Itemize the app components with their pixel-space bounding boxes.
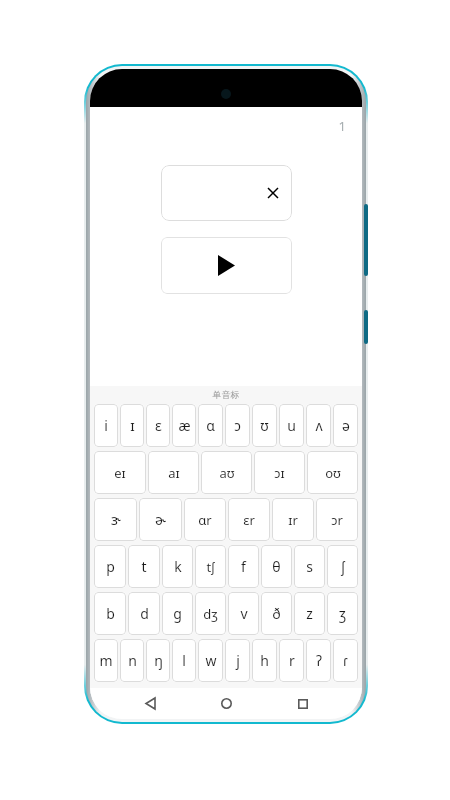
staticText: ŋ xyxy=(154,651,163,670)
staticText: i xyxy=(104,416,108,435)
button[interactable]: ɔr xyxy=(316,498,358,541)
button[interactable]: Clear xyxy=(262,182,284,204)
staticText: t xyxy=(141,557,147,576)
button[interactable]: Back xyxy=(133,688,167,719)
button[interactable]: Clear xyxy=(161,165,292,221)
staticText: ʒ xyxy=(339,604,346,623)
staticText: ɔ xyxy=(234,416,241,435)
button[interactable]: n xyxy=(120,639,144,682)
button[interactable]: ɑ xyxy=(198,404,223,447)
staticText: ɾ xyxy=(343,651,348,670)
staticText: ɔɪ xyxy=(274,464,285,482)
button[interactable]: eɪ xyxy=(94,451,146,494)
button[interactable]: ɪr xyxy=(272,498,314,541)
staticText: tʃ xyxy=(206,558,215,576)
staticText: ɪ xyxy=(130,416,135,435)
staticText: v xyxy=(240,604,248,623)
button[interactable]: d xyxy=(128,592,160,635)
button[interactable]: Play xyxy=(161,237,292,294)
staticText: ɔr xyxy=(331,511,343,529)
staticText: ɛ xyxy=(155,416,162,435)
button[interactable]: aʊ xyxy=(201,451,252,494)
staticText: d xyxy=(140,604,149,623)
button[interactable]: ɔɪ xyxy=(254,451,305,494)
staticText: r xyxy=(289,651,295,670)
staticText: ə xyxy=(342,416,350,435)
staticText: u xyxy=(287,416,296,435)
button[interactable]: j xyxy=(225,639,250,682)
staticText: 1 xyxy=(90,117,346,135)
button[interactable]: k xyxy=(162,545,193,588)
staticText: j xyxy=(236,651,240,670)
button[interactable]: ʔ xyxy=(306,639,331,682)
staticText: ʃ xyxy=(341,557,345,576)
staticText: b xyxy=(106,604,115,623)
staticText: ʔ xyxy=(316,651,322,670)
button[interactable]: ð xyxy=(261,592,292,635)
button[interactable]: b xyxy=(94,592,126,635)
staticText: ʌ xyxy=(315,416,323,435)
staticText: m xyxy=(99,651,113,670)
button[interactable]: p xyxy=(94,545,126,588)
button[interactable]: f xyxy=(228,545,259,588)
button[interactable]: ʒ xyxy=(327,592,358,635)
button[interactable]: l xyxy=(172,639,196,682)
staticText: ɚ xyxy=(155,510,166,529)
button[interactable]: g xyxy=(162,592,193,635)
button[interactable]: ə xyxy=(333,404,358,447)
button[interactable]: aɪ xyxy=(148,451,199,494)
button[interactable]: ɛr xyxy=(228,498,270,541)
button[interactable]: ɑr xyxy=(184,498,226,541)
button[interactable]: r xyxy=(279,639,304,682)
button[interactable]: m xyxy=(94,639,118,682)
button[interactable]: ɛ xyxy=(146,404,170,447)
staticText: z xyxy=(306,604,313,623)
button[interactable]: Recents xyxy=(286,688,320,719)
staticText: w xyxy=(205,651,217,670)
button[interactable]: t xyxy=(128,545,160,588)
button[interactable]: θ xyxy=(261,545,292,588)
button[interactable]: v xyxy=(228,592,259,635)
staticText: g xyxy=(173,604,182,623)
button[interactable]: h xyxy=(252,639,277,682)
button[interactable]: ɪ xyxy=(120,404,144,447)
staticText: oʊ xyxy=(325,464,341,482)
staticText: ɪr xyxy=(288,511,298,529)
staticText: l xyxy=(182,651,186,670)
button[interactable]: dʒ xyxy=(195,592,226,635)
button[interactable]: s xyxy=(294,545,325,588)
staticText: eɪ xyxy=(114,464,126,482)
staticText: p xyxy=(106,557,115,576)
button[interactable]: ŋ xyxy=(146,639,170,682)
button[interactable]: tʃ xyxy=(195,545,226,588)
staticText: 单音标 xyxy=(90,389,362,400)
staticText: æ xyxy=(178,416,191,435)
button[interactable]: oʊ xyxy=(307,451,358,494)
button[interactable]: u xyxy=(279,404,304,447)
button[interactable]: Home xyxy=(209,688,243,719)
staticText: ɛr xyxy=(243,511,255,529)
button[interactable]: i xyxy=(94,404,118,447)
button[interactable]: ɝ xyxy=(94,498,137,541)
staticText: s xyxy=(306,557,313,576)
staticText: aʊ xyxy=(219,464,235,482)
staticText: n xyxy=(128,651,137,670)
button[interactable]: ʃ xyxy=(327,545,358,588)
staticText: k xyxy=(174,557,182,576)
staticText: θ xyxy=(272,557,281,576)
staticText: ʊ xyxy=(260,416,269,435)
button[interactable]: ʌ xyxy=(306,404,331,447)
staticText: dʒ xyxy=(203,605,218,623)
staticText: ɑr xyxy=(198,511,212,529)
button[interactable]: ʊ xyxy=(252,404,277,447)
button[interactable]: æ xyxy=(172,404,196,447)
staticText: ɑ xyxy=(206,416,215,435)
staticText: aɪ xyxy=(168,464,180,482)
staticText: ɝ xyxy=(111,510,121,529)
button[interactable]: ɚ xyxy=(139,498,182,541)
button[interactable]: ɾ xyxy=(333,639,358,682)
button[interactable]: ɔ xyxy=(225,404,250,447)
staticText: h xyxy=(260,651,269,670)
button[interactable]: w xyxy=(198,639,223,682)
button[interactable]: z xyxy=(294,592,325,635)
